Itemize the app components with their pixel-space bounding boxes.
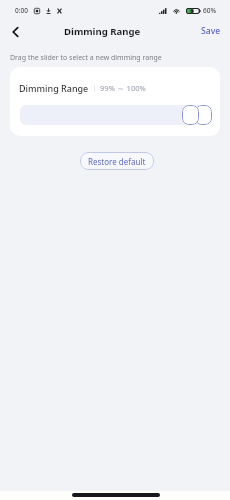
- button[interactable]: Dimming range slider: [20, 104, 210, 125]
- staticText: 60%: [203, 6, 216, 15]
- button[interactable]: Back: [5, 21, 26, 42]
- staticText: Save: [201, 25, 221, 37]
- staticText: Restore default: [88, 156, 146, 167]
- staticText: 99% ～ 100%: [100, 83, 146, 93]
- staticText: 0:00: [15, 6, 28, 15]
- staticText: Dimming Range: [19, 82, 89, 94]
- button[interactable]: Save: [192, 21, 230, 41]
- button[interactable]: Restore default: [80, 152, 154, 170]
- staticText: Drag the slider to select a new dimming …: [10, 53, 162, 63]
- staticText: Dimming Range: [64, 25, 141, 38]
